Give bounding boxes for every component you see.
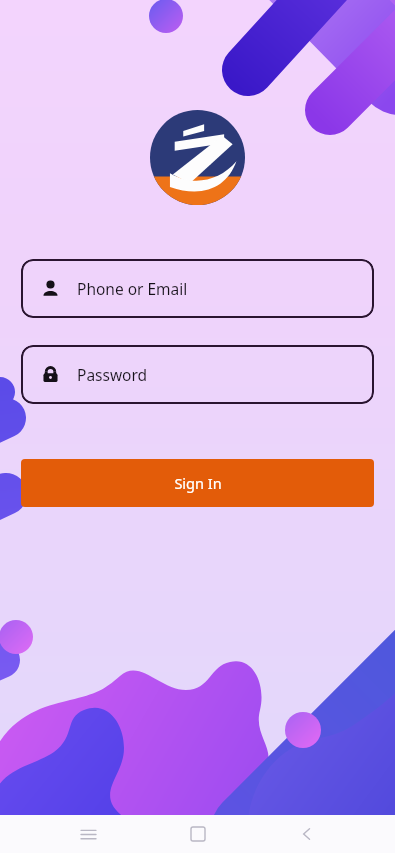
staticText: Password [77, 364, 148, 385]
button[interactable]: Password [21, 345, 374, 404]
button[interactable]: Phone or Email [21, 259, 374, 318]
button[interactable]: Sign In [21, 459, 374, 507]
button[interactable]: Back [285, 815, 329, 853]
staticText: Sign In [174, 473, 222, 493]
button[interactable]: Recent apps [66, 815, 110, 853]
staticText: Phone or Email [77, 278, 188, 299]
button[interactable]: Home [176, 815, 220, 853]
